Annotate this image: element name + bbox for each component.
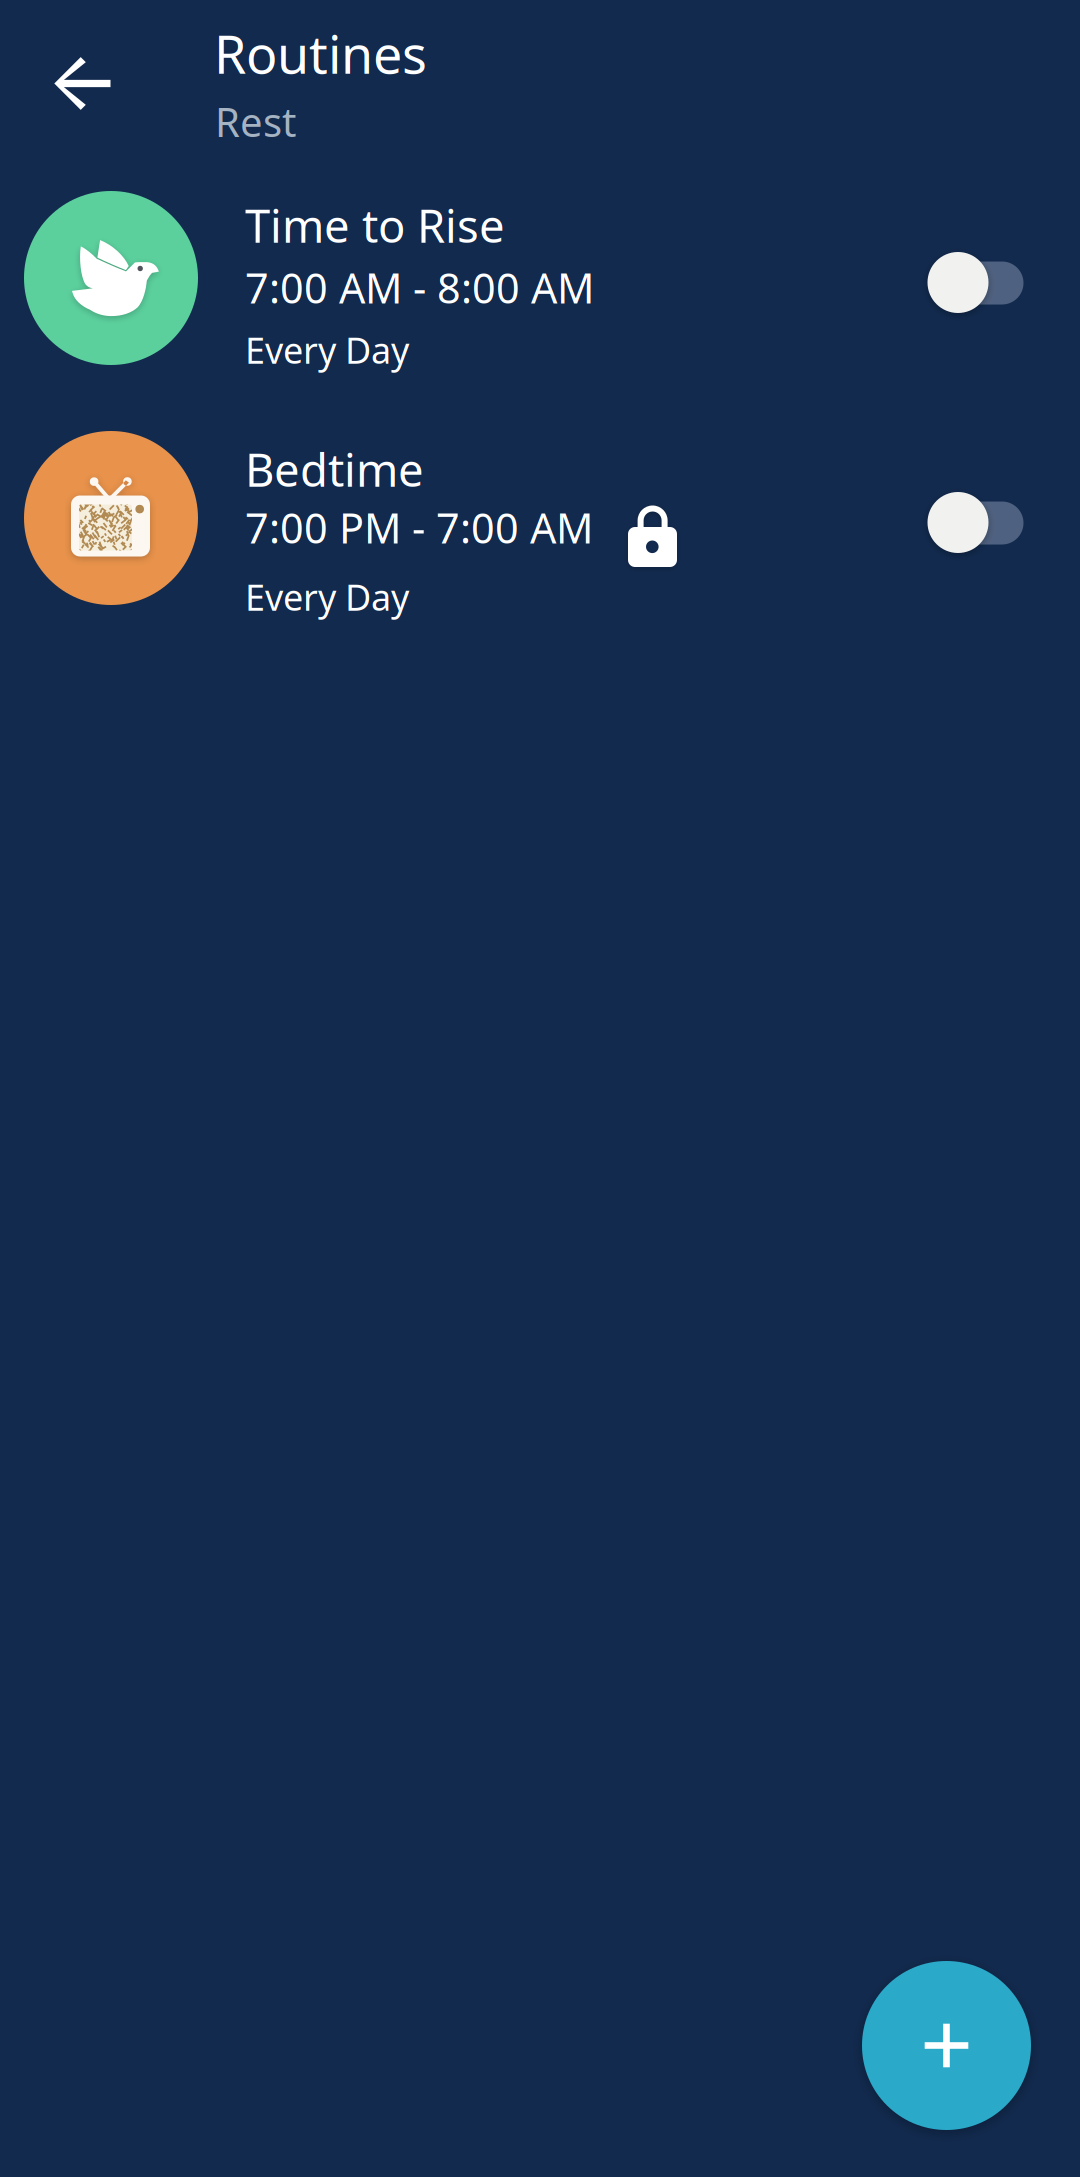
button[interactable]: Enable Bedtime bbox=[921, 492, 1017, 553]
staticText: Every Day bbox=[245, 573, 409, 621]
staticText: Routines bbox=[214, 19, 427, 88]
button[interactable]: Back bbox=[13, 14, 153, 154]
button[interactable]: Time to Rise bbox=[0, 180, 1080, 420]
staticText: 7:00 AM - 8:00 AM bbox=[245, 260, 594, 315]
staticText: Rest bbox=[215, 95, 296, 148]
button[interactable]: Add routine bbox=[862, 1961, 1031, 2130]
staticText: Every Day bbox=[245, 326, 409, 374]
button[interactable]: Bedtime bbox=[0, 420, 1080, 660]
staticText: Bedtime bbox=[245, 439, 424, 499]
staticText: 7:00 PM - 7:00 AM bbox=[245, 500, 593, 555]
button[interactable]: Enable Time to Rise bbox=[921, 252, 1017, 313]
staticText: Time to Rise bbox=[245, 195, 505, 255]
